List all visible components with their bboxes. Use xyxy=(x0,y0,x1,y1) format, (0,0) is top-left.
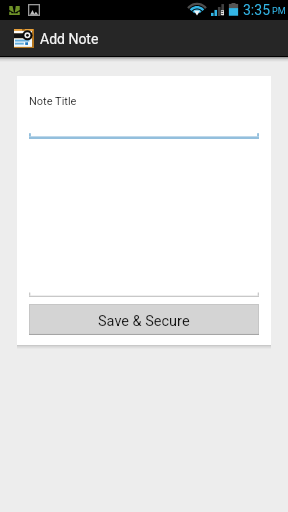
staticText: PM xyxy=(272,6,286,17)
button[interactable]: Note Title field xyxy=(29,76,259,139)
staticText: Save & Secure xyxy=(98,313,190,330)
staticText: Add Note xyxy=(40,31,99,47)
other: Secure Notes xyxy=(14,29,34,48)
button[interactable]: Save & Secure xyxy=(29,304,259,335)
staticText: Note Title xyxy=(29,95,77,108)
button[interactable]: Note body field xyxy=(29,139,259,297)
staticText: 3:35 xyxy=(243,2,270,18)
